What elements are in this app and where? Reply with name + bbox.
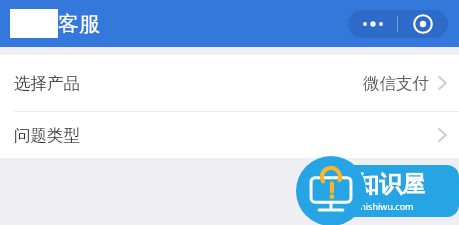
- button[interactable]: Close mini program: [398, 10, 448, 38]
- staticText: 问题类型: [14, 125, 80, 146]
- staticText: 微信支付: [363, 73, 429, 94]
- button[interactable]: 选择产品: [0, 55, 459, 111]
- button[interactable]: 问题类型: [0, 112, 459, 158]
- staticText: 客服: [58, 11, 100, 37]
- staticText: 选择产品: [14, 73, 80, 94]
- staticText: 知识屋: [356, 170, 425, 199]
- button[interactable]: More options: [348, 10, 397, 38]
- staticText: zhishiwu.com: [356, 200, 414, 212]
